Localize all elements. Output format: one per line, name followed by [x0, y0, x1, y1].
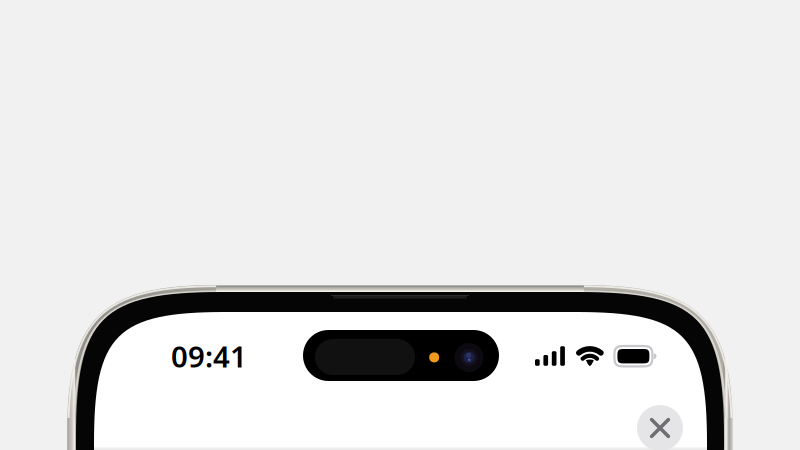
- button[interactable]: Close: [637, 405, 683, 450]
- staticText: 09:41: [171, 336, 247, 375]
